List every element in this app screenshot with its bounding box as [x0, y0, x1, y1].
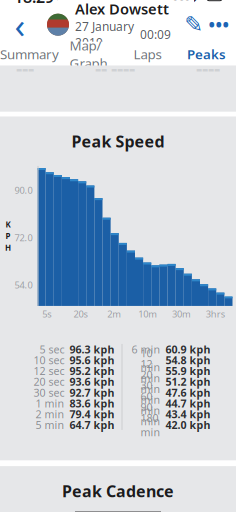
staticText: 3hrs [206, 308, 225, 320]
staticText: K [5, 219, 10, 230]
staticText: 6 min [131, 342, 160, 356]
staticText: 54.8 kph [165, 353, 210, 367]
staticText: ▬▬ ▬▬▬▬ [95, 66, 135, 73]
staticText: SOS [173, 0, 190, 3]
staticText: 18:29 [14, 0, 54, 7]
staticText: 95.2 kph [69, 364, 114, 378]
staticText: ••• [208, 13, 229, 36]
staticText: Peak Cadence [62, 480, 174, 501]
staticText: 44.7 kph [165, 396, 210, 410]
staticText: 43.4 kph [165, 407, 210, 421]
staticText: 51.2 kph [165, 375, 210, 389]
staticText: 180 min [140, 411, 160, 439]
button[interactable]: Summary [0, 42, 59, 66]
staticText: 20s [73, 308, 87, 320]
staticText: 60 min [140, 389, 160, 417]
staticText: 30 sec [33, 385, 64, 400]
staticText: 93.6 kph [69, 375, 114, 389]
staticText: 5 min [35, 418, 64, 432]
button[interactable]: Edit [182, 10, 206, 40]
staticText: Map/Graph [69, 36, 107, 72]
staticText: 95.6 kph [69, 353, 114, 367]
staticText: 00:09 [140, 26, 171, 42]
staticText: 90.0 [14, 184, 32, 196]
staticText: Peak Speed [71, 131, 164, 152]
staticText: 54.0 [14, 279, 32, 291]
staticText: Summary [0, 45, 59, 63]
staticText: P [5, 231, 10, 241]
staticText: 83.6 kph [69, 396, 114, 410]
staticText: 42.0 kph [165, 418, 210, 432]
staticText: 30m [172, 308, 191, 320]
staticText: Alex Dowsett [75, 0, 169, 18]
staticText: 96.3 kph [69, 342, 114, 356]
button[interactable]: Peaks [177, 42, 236, 66]
staticText: 92.7 kph [69, 385, 114, 400]
staticText: 10m [138, 308, 157, 320]
staticText: 5 sec [39, 342, 64, 356]
staticText: 2 min [35, 407, 64, 421]
staticText: ‹ [14, 2, 25, 48]
staticText: H [5, 242, 11, 253]
button[interactable]: Back [4, 8, 36, 42]
staticText: 90 min [140, 400, 160, 428]
staticText: 20 sec [33, 375, 64, 389]
staticText: Laps [133, 45, 161, 63]
staticText: 55.9 kph [165, 364, 210, 378]
button[interactable]: More options [206, 10, 232, 40]
staticText: 47.6 kph [165, 385, 210, 400]
button[interactable]: Map/Graph [59, 42, 118, 66]
staticText: 5s [42, 308, 51, 320]
staticText: 60.9 kph [165, 342, 210, 356]
staticText: ✎ [184, 12, 203, 37]
staticText: 10 sec [33, 353, 64, 367]
staticText: 64.7 kph [69, 418, 114, 432]
staticText: ▬▬▬ [16, 66, 34, 73]
button[interactable]: Laps [118, 42, 177, 66]
staticText: 27 January 2019 [75, 18, 134, 50]
staticText: 10 min [140, 346, 160, 374]
staticText: 30 min [140, 378, 160, 407]
staticText: 72.0 [14, 231, 32, 244]
staticText: 12 min [140, 357, 160, 385]
staticText: Peaks [187, 45, 226, 63]
staticText: 1 min [35, 396, 64, 410]
staticText: 20 min [140, 368, 160, 396]
staticText: 12 sec [33, 364, 64, 378]
staticText: 79.4 kph [69, 407, 114, 421]
staticText: 2m [107, 308, 121, 320]
staticText: ◤ [194, 0, 203, 3]
staticText: ▬▬▬▬ [196, 66, 220, 73]
